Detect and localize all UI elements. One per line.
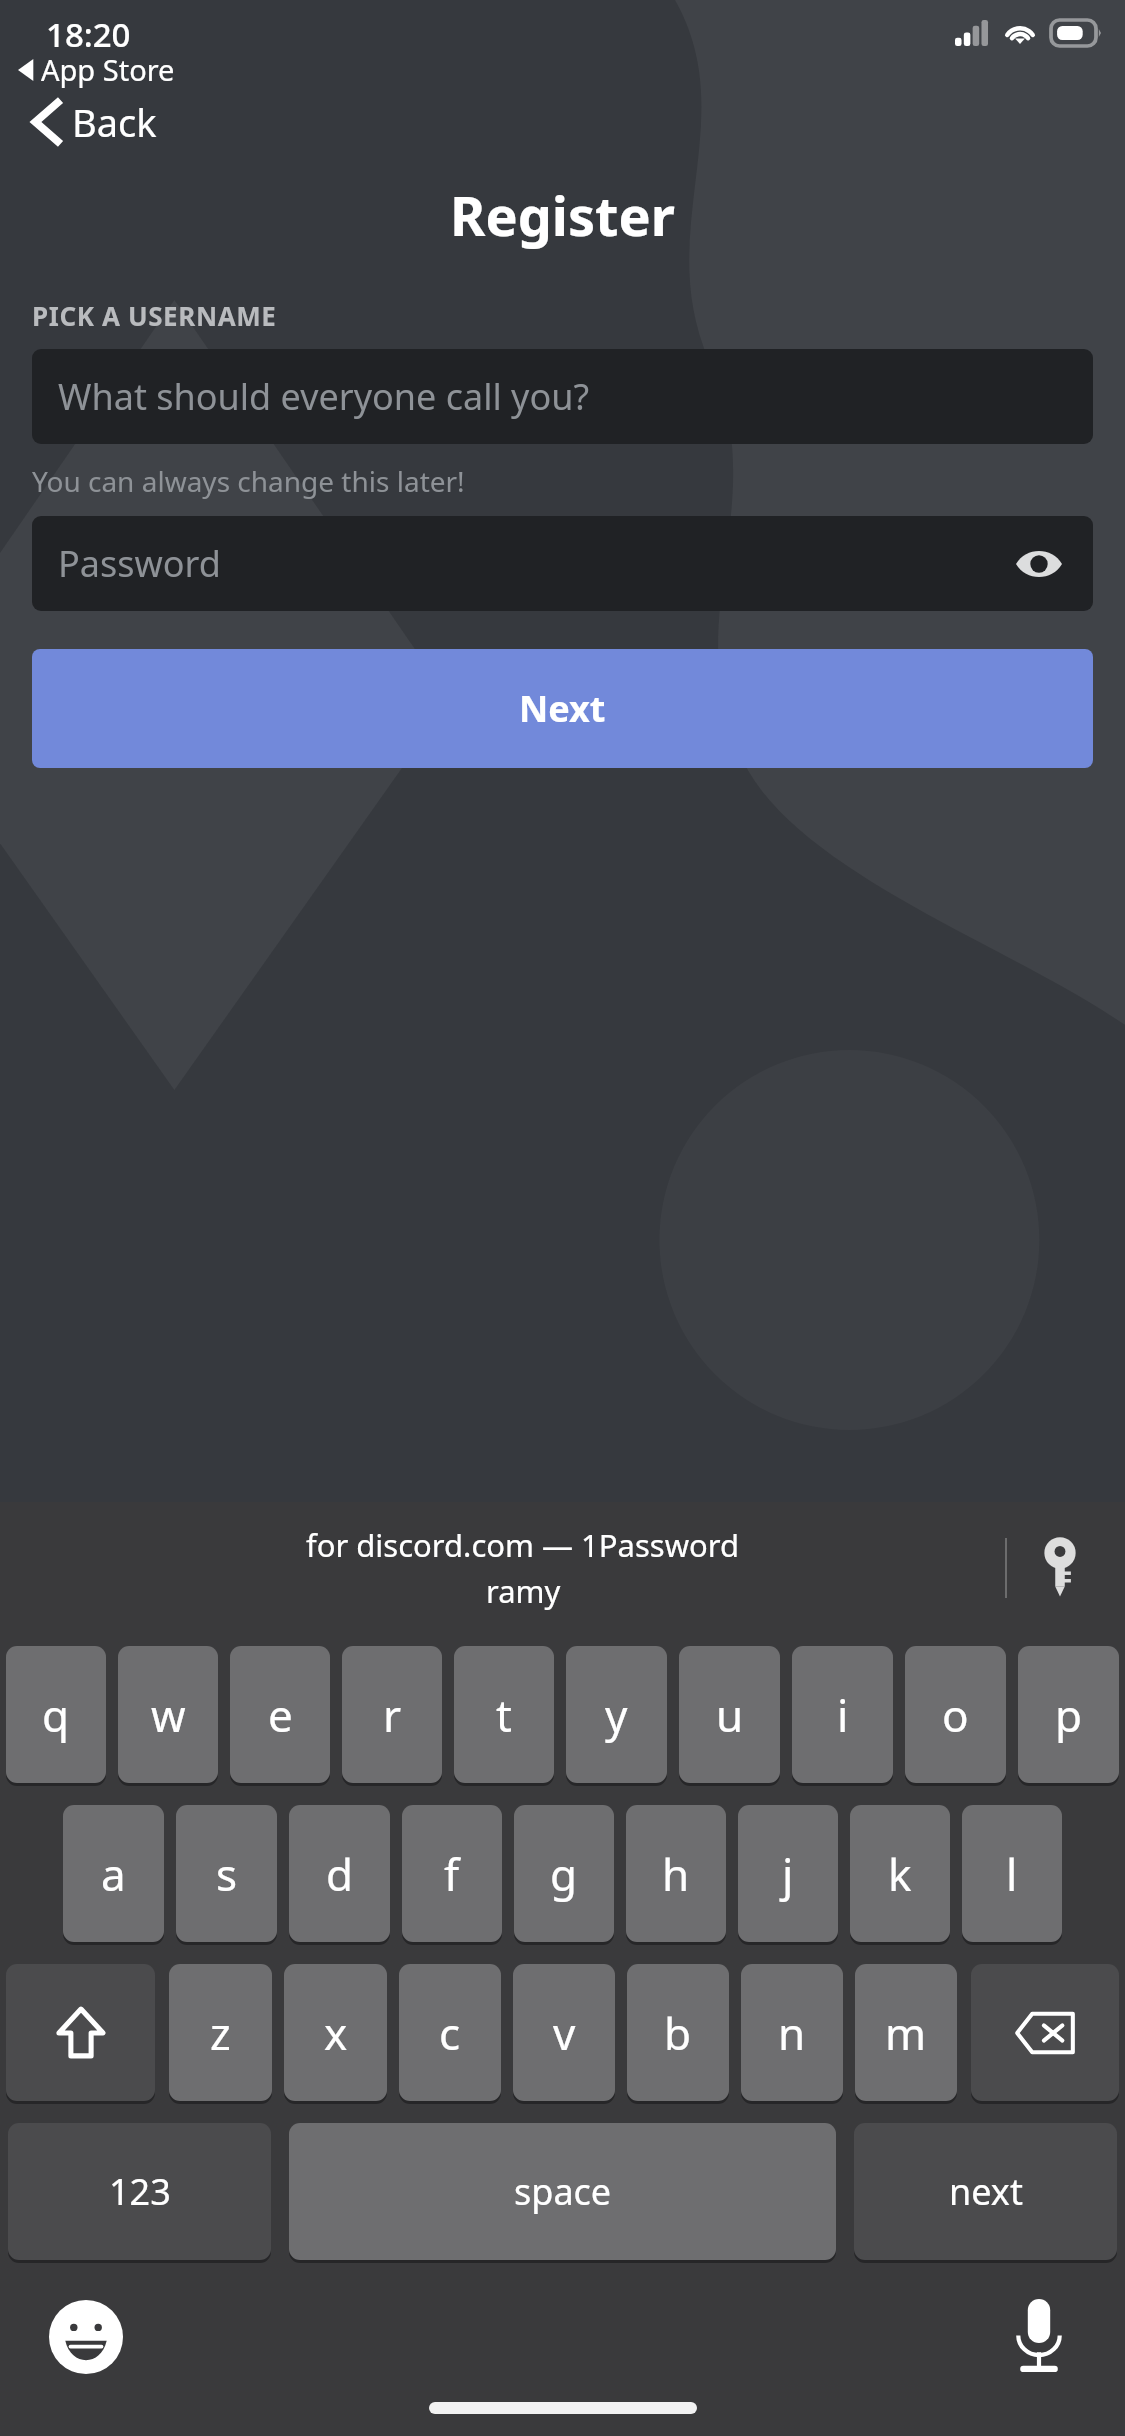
staticText: m [885, 2003, 927, 2063]
button[interactable]: Dictation [997, 2295, 1081, 2379]
staticText: r [383, 1685, 402, 1745]
button[interactable]: What should everyone call you? [32, 349, 1093, 444]
button[interactable]: Show password [1011, 536, 1067, 592]
button[interactable]: t [454, 1646, 554, 1783]
button[interactable]: Back [22, 90, 165, 154]
staticText: What should everyone call you? [58, 372, 590, 421]
button[interactable]: space [289, 2123, 836, 2260]
button[interactable]: z [169, 1964, 272, 2101]
staticText: t [496, 1685, 512, 1745]
staticText: g [550, 1844, 578, 1904]
button[interactable]: Shift [6, 1964, 155, 2101]
button[interactable]: m [855, 1964, 957, 2101]
staticText: q [42, 1685, 70, 1745]
button[interactable]: for discord.com — 1Password [306, 1524, 740, 1612]
button[interactable]: d [289, 1805, 390, 1942]
staticText: d [326, 1844, 354, 1904]
staticText: w [151, 1685, 186, 1745]
staticText: l [1006, 1844, 1018, 1904]
staticText: o [942, 1685, 969, 1745]
button[interactable]: b [627, 1964, 729, 2101]
staticText: h [662, 1844, 690, 1904]
button[interactable]: Password [32, 516, 1093, 611]
staticText: a [101, 1844, 126, 1904]
button[interactable]: i [792, 1646, 893, 1783]
staticText: next [949, 2167, 1023, 2216]
staticText: ramy [486, 1570, 561, 1612]
staticText: y [605, 1685, 628, 1745]
staticText: k [888, 1844, 912, 1904]
staticText: x [324, 2003, 348, 2063]
staticText: i [837, 1685, 849, 1745]
staticText: PICK A USERNAME [32, 298, 277, 333]
button[interactable]: g [514, 1805, 614, 1942]
button[interactable]: n [741, 1964, 843, 2101]
button[interactable]: h [626, 1805, 726, 1942]
button[interactable]: o [905, 1646, 1006, 1783]
button[interactable]: x [284, 1964, 387, 2101]
button[interactable]: l [962, 1805, 1062, 1942]
button[interactable]: r [342, 1646, 442, 1783]
button[interactable]: f [402, 1805, 502, 1942]
staticText: j [782, 1844, 794, 1904]
button[interactable]: a [63, 1805, 164, 1942]
staticText: space [514, 2167, 612, 2216]
staticText: Register [0, 178, 1125, 252]
button[interactable]: j [738, 1805, 838, 1942]
button[interactable]: v [513, 1964, 615, 2101]
button[interactable]: c [399, 1964, 501, 2101]
button[interactable]: w [118, 1646, 218, 1783]
staticText: z [210, 2003, 231, 2063]
button[interactable]: Passwords [1025, 1533, 1095, 1603]
staticText: c [439, 2003, 461, 2063]
staticText: v [553, 2003, 576, 2063]
staticText: App Store [41, 50, 175, 89]
staticText: Back [72, 96, 157, 148]
button[interactable]: Backspace [971, 1964, 1119, 2101]
button[interactable]: 123 [8, 2123, 271, 2260]
button[interactable]: Next [32, 649, 1093, 768]
button[interactable]: s [176, 1805, 277, 1942]
button[interactable]: y [566, 1646, 667, 1783]
staticText: e [268, 1685, 293, 1745]
staticText: 18:20 [46, 12, 131, 57]
button[interactable]: u [679, 1646, 780, 1783]
button[interactable]: p [1018, 1646, 1119, 1783]
staticText: 123 [109, 2167, 171, 2216]
button[interactable]: k [850, 1805, 950, 1942]
staticText: b [664, 2003, 692, 2063]
button[interactable]: e [230, 1646, 330, 1783]
button[interactable]: q [6, 1646, 106, 1783]
button[interactable]: Emoji [44, 2295, 128, 2379]
staticText: u [716, 1685, 744, 1745]
staticText: n [778, 2003, 806, 2063]
staticText: for discord.com — 1Password [306, 1524, 740, 1566]
staticText: f [444, 1844, 460, 1904]
staticText: Password [58, 539, 221, 588]
staticText: You can always change this later! [32, 462, 465, 500]
staticText: s [216, 1844, 238, 1904]
staticText: p [1055, 1685, 1083, 1745]
button[interactable]: next [854, 2123, 1117, 2260]
staticText: Next [519, 684, 606, 733]
